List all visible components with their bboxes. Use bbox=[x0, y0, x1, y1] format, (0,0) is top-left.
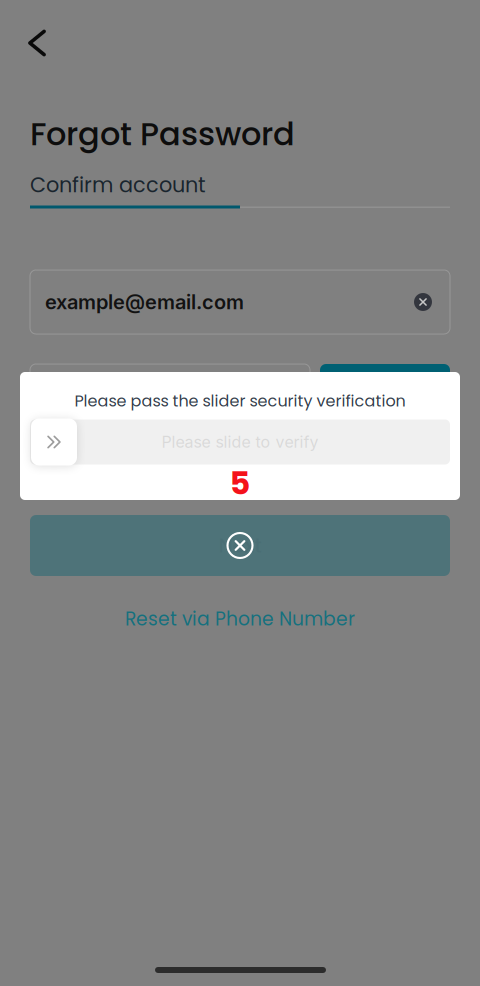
staticText: Please pass the slider security verifica… bbox=[74, 390, 405, 412]
staticText: Please slide to verify bbox=[161, 432, 318, 452]
staticText: Reset via Phone Number bbox=[125, 606, 355, 632]
staticText: Next bbox=[218, 531, 261, 559]
staticText: Confirm account bbox=[30, 170, 206, 199]
staticText: Forgot Password bbox=[30, 112, 295, 156]
button[interactable]: Next bbox=[30, 515, 450, 576]
button[interactable]: Back bbox=[14, 20, 60, 66]
button[interactable]: Reset via Phone Number bbox=[30, 602, 450, 636]
button[interactable]: Slide to verify bbox=[31, 418, 77, 465]
staticText: 5 bbox=[229, 461, 250, 505]
staticText: example@email.com bbox=[45, 290, 244, 314]
